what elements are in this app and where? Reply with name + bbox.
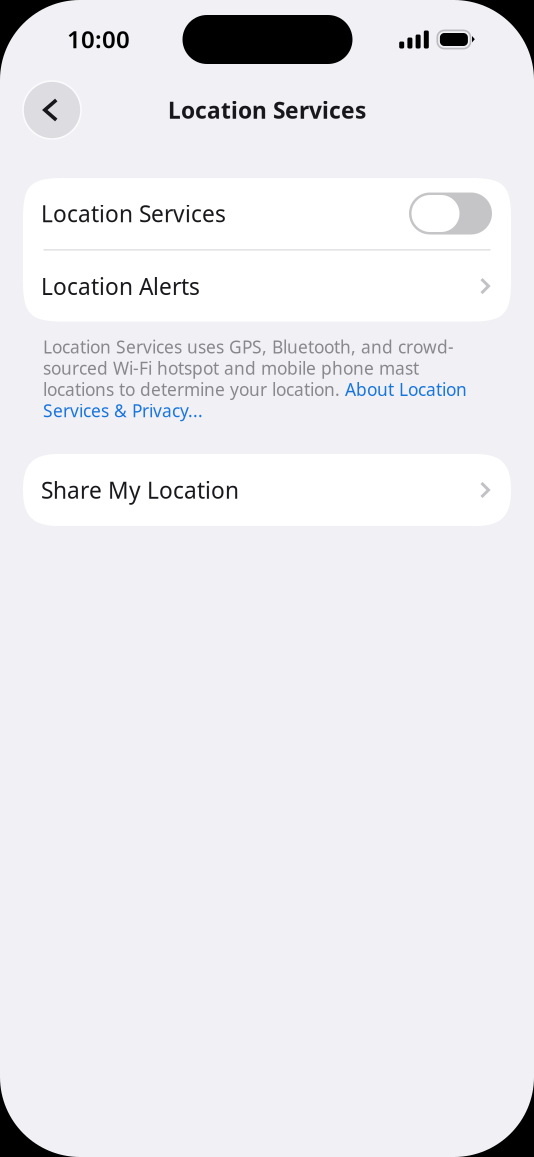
staticText: locations to determine your location.	[43, 378, 345, 401]
staticText: Location Services uses GPS, Bluetooth, a…	[43, 335, 454, 358]
button[interactable]: Back	[23, 81, 81, 139]
button[interactable]: Location Services	[23, 178, 511, 249]
button[interactable]: Services & Privacy...	[43, 399, 203, 422]
staticText: sourced Wi-Fi hotspot and mobile phone m…	[43, 356, 419, 379]
button[interactable]: Share My Location	[23, 454, 511, 526]
staticText: Location Services	[168, 95, 366, 125]
staticText: About Location	[345, 378, 467, 401]
staticText: Location Alerts	[41, 271, 200, 301]
button[interactable]: About Location	[345, 378, 467, 401]
staticText: Share My Location	[41, 475, 239, 505]
button[interactable]: Location Alerts	[23, 251, 511, 322]
staticText: Location Services	[41, 198, 226, 228]
staticText: Services & Privacy...	[43, 399, 203, 422]
staticText: 10:00	[67, 23, 130, 55]
